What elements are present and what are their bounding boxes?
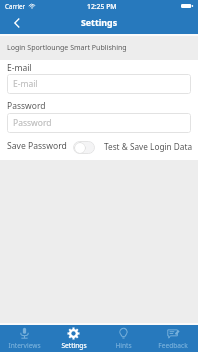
staticText: Settings xyxy=(61,341,87,350)
button[interactable]: Hints xyxy=(98,325,148,352)
staticText: Login Sportlounge Smart Publishing xyxy=(7,42,127,52)
button[interactable]: Save Password toggle xyxy=(73,141,95,154)
button[interactable]: Settings xyxy=(49,325,98,352)
staticText: Test & Save Login Data xyxy=(104,141,193,152)
button[interactable]: Feedback xyxy=(148,325,198,352)
staticText: Hints xyxy=(115,341,132,350)
button[interactable]: E-mail xyxy=(7,74,191,94)
staticText: Password xyxy=(7,100,46,112)
staticText: 12:25 PM xyxy=(87,2,117,11)
staticText: Carrier xyxy=(5,2,26,10)
button[interactable]: Interviews xyxy=(0,325,49,352)
staticText: Settings xyxy=(81,17,118,29)
staticText: Interviews xyxy=(8,341,41,350)
staticText: Password xyxy=(13,117,52,129)
staticText: Save Password xyxy=(7,140,67,152)
staticText: Feedback xyxy=(158,341,188,350)
button[interactable]: Password xyxy=(7,113,191,133)
staticText: E-mail xyxy=(7,62,32,74)
staticText: E-mail xyxy=(13,78,38,90)
button[interactable]: Back xyxy=(7,13,27,33)
